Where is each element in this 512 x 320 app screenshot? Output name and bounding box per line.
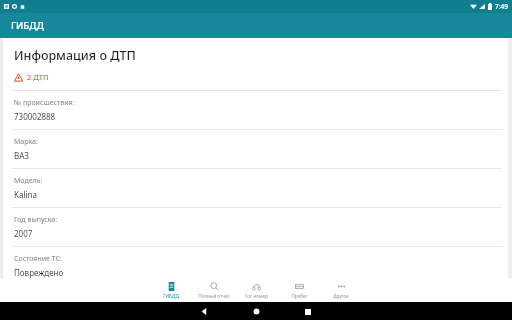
staticText: Пробег [291, 293, 308, 299]
button[interactable]: Полный отчет [193, 278, 235, 302]
staticText: ВАЗ [14, 150, 29, 161]
staticText: Гос номер [245, 293, 268, 299]
staticText: Модель: [14, 176, 43, 186]
button[interactable]: Пробег [278, 278, 320, 302]
staticText: Марка: [14, 137, 38, 147]
staticText: 730002888 [14, 111, 56, 122]
staticText: Год выпуска: [14, 215, 58, 225]
staticText: 7:49 [495, 2, 508, 11]
button[interactable]: Состояние ТС: [3, 247, 508, 278]
staticText: Информация о ДТП [14, 47, 136, 64]
button[interactable]: ГИБДД [150, 278, 192, 302]
staticText: ГИБДД [11, 19, 44, 32]
staticText: 2007 [14, 228, 33, 239]
staticText: ГИБДД [163, 293, 179, 299]
staticText: Полный отчет [198, 293, 230, 299]
button[interactable]: Гос номер [235, 278, 277, 302]
button[interactable]: Год выпуска: [3, 208, 508, 247]
staticText: Состояние ТС: [14, 254, 62, 264]
staticText: № происшествия: [14, 98, 75, 108]
button[interactable]: № происшествия: [3, 91, 508, 130]
other: Back [201, 308, 208, 315]
staticText: Другое [333, 293, 349, 299]
staticText: Kalina [14, 189, 37, 200]
button[interactable]: Модель: [3, 169, 508, 208]
button[interactable]: Другое [320, 278, 362, 302]
other: Home [253, 308, 260, 315]
button[interactable]: Марка: [3, 130, 508, 169]
staticText: Повреждено [14, 267, 64, 278]
staticText: 2 ДТП [27, 72, 49, 82]
